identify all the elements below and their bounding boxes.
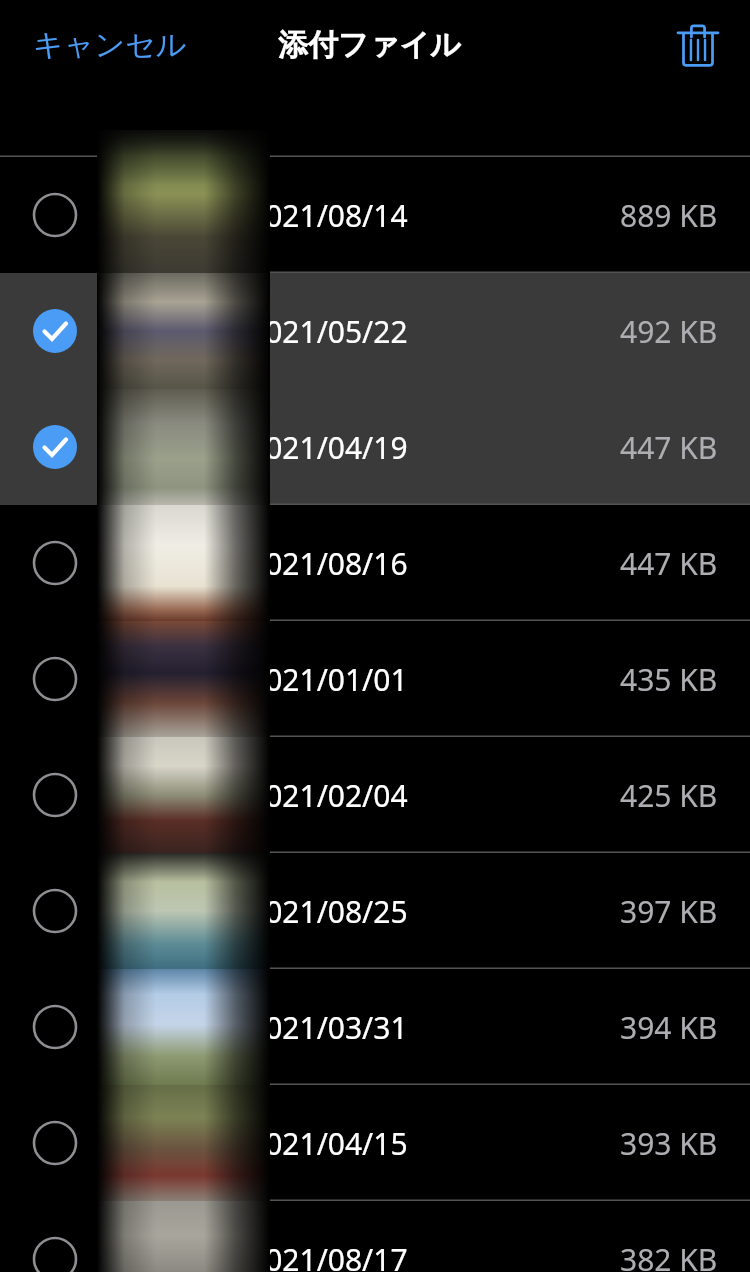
staticText: 添付ファイル: [278, 26, 461, 64]
button[interactable]: Delete: [662, 10, 734, 82]
button[interactable]: キャンセル: [18, 16, 202, 74]
staticText: キャンセル: [33, 26, 187, 64]
